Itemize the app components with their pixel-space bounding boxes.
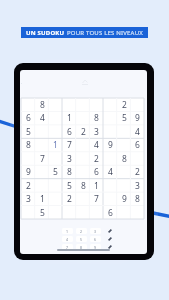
staticText: 2: [81, 126, 86, 138]
staticText: 3: [26, 193, 31, 205]
button[interactable]: 5: [35, 206, 49, 219]
staticText: 9: [122, 193, 127, 205]
button[interactable]: 4: [62, 236, 73, 242]
staticText: 6: [108, 207, 113, 219]
button[interactable]: 8: [35, 98, 49, 111]
staticText: 2: [135, 166, 140, 178]
staticText: 9: [94, 245, 97, 250]
button[interactable]: 9: [90, 244, 101, 250]
staticText: 2: [94, 153, 99, 165]
button[interactable]: 8: [76, 244, 87, 250]
button[interactable]: 9: [21, 165, 35, 178]
button[interactable]: Pencil: [104, 236, 115, 242]
staticText: 8: [67, 166, 72, 178]
button[interactable]: 1: [48, 138, 62, 151]
button[interactable]: 2: [76, 228, 87, 234]
button[interactable]: 8: [130, 192, 144, 205]
button[interactable]: 2: [21, 179, 35, 192]
staticText: 4: [135, 126, 140, 138]
staticText: 4: [94, 139, 99, 151]
button[interactable]: 7: [89, 192, 103, 205]
button[interactable]: 2: [76, 125, 90, 138]
staticText: 5: [40, 207, 45, 219]
button[interactable]: 1: [89, 179, 103, 192]
button[interactable]: 5: [62, 179, 76, 192]
button[interactable]: 8: [62, 165, 76, 178]
staticText: 6: [26, 112, 31, 124]
staticText: 8: [26, 139, 31, 151]
staticText: 3: [94, 126, 99, 138]
button[interactable]: 1: [62, 111, 76, 124]
button[interactable]: 5: [117, 111, 131, 124]
staticText: 4: [66, 237, 69, 242]
button[interactable]: 5: [21, 125, 35, 138]
staticText: 2: [80, 229, 83, 234]
button[interactable]: 2: [62, 192, 76, 205]
button[interactable]: 3: [21, 192, 35, 205]
staticText: 1: [94, 180, 99, 192]
button[interactable]: 8: [117, 152, 131, 165]
staticText: 5: [53, 166, 58, 178]
button[interactable]: 6: [62, 125, 76, 138]
staticText: 8: [122, 153, 127, 165]
staticText: 6: [94, 166, 99, 178]
staticText: 2: [26, 180, 31, 192]
staticText: 2: [122, 99, 127, 111]
button[interactable]: Pencil: [104, 228, 115, 234]
staticText: 2: [67, 193, 72, 205]
staticText: 5: [122, 112, 127, 124]
staticText: 6: [94, 237, 97, 242]
staticText: 7: [94, 193, 99, 205]
button[interactable]: 1: [35, 192, 49, 205]
button[interactable]: 4: [103, 165, 117, 178]
button[interactable]: UN SUDOKU: [21, 27, 148, 38]
staticText: 8: [80, 245, 83, 250]
button[interactable]: 9: [117, 192, 131, 205]
staticText: POUR TOUS LES NIVEAUX: [67, 29, 143, 37]
button[interactable]: 3: [130, 179, 144, 192]
button[interactable]: 8: [21, 138, 35, 151]
button[interactable]: 2: [130, 165, 144, 178]
staticText: 7: [66, 245, 69, 250]
staticText: 4: [40, 112, 45, 124]
button[interactable]: 6: [130, 138, 144, 151]
button[interactable]: 1: [62, 228, 73, 234]
button[interactable]: 8: [76, 179, 90, 192]
staticText: 4: [108, 166, 113, 178]
staticText: 8: [81, 180, 86, 192]
staticText: 8: [135, 193, 140, 205]
button[interactable]: 3: [89, 125, 103, 138]
staticText: 1: [40, 193, 45, 205]
staticText: 6: [67, 126, 72, 138]
button[interactable]: 6: [89, 165, 103, 178]
staticText: 8: [94, 112, 99, 124]
button[interactable]: 2: [117, 98, 131, 111]
button[interactable]: 6: [90, 236, 101, 242]
button[interactable]: 6: [103, 206, 117, 219]
button[interactable]: 8: [89, 111, 103, 124]
button[interactable]: 7: [35, 152, 49, 165]
button[interactable]: 4: [130, 125, 144, 138]
button[interactable]: 9: [130, 111, 144, 124]
button[interactable]: 4: [89, 138, 103, 151]
button[interactable]: 3: [62, 152, 76, 165]
staticText: 3: [94, 229, 97, 234]
button[interactable]: 3: [90, 228, 101, 234]
staticText: UN SUDOKU: [26, 29, 67, 37]
button[interactable]: 7: [62, 244, 73, 250]
button[interactable]: 5: [76, 236, 87, 242]
staticText: 3: [67, 153, 72, 165]
staticText: 5: [80, 237, 83, 242]
button[interactable]: 6: [21, 111, 35, 124]
button[interactable]: 5: [48, 165, 62, 178]
button[interactable]: 4: [35, 111, 49, 124]
staticText: 7: [40, 153, 45, 165]
staticText: 5: [26, 126, 31, 138]
button[interactable]: Pencil: [104, 244, 115, 250]
staticText: 9: [135, 112, 140, 124]
staticText: 1: [53, 139, 58, 151]
button[interactable]: 7: [62, 138, 76, 151]
button[interactable]: 2: [89, 152, 103, 165]
staticText: 3: [135, 180, 140, 192]
button[interactable]: 9: [103, 138, 117, 151]
